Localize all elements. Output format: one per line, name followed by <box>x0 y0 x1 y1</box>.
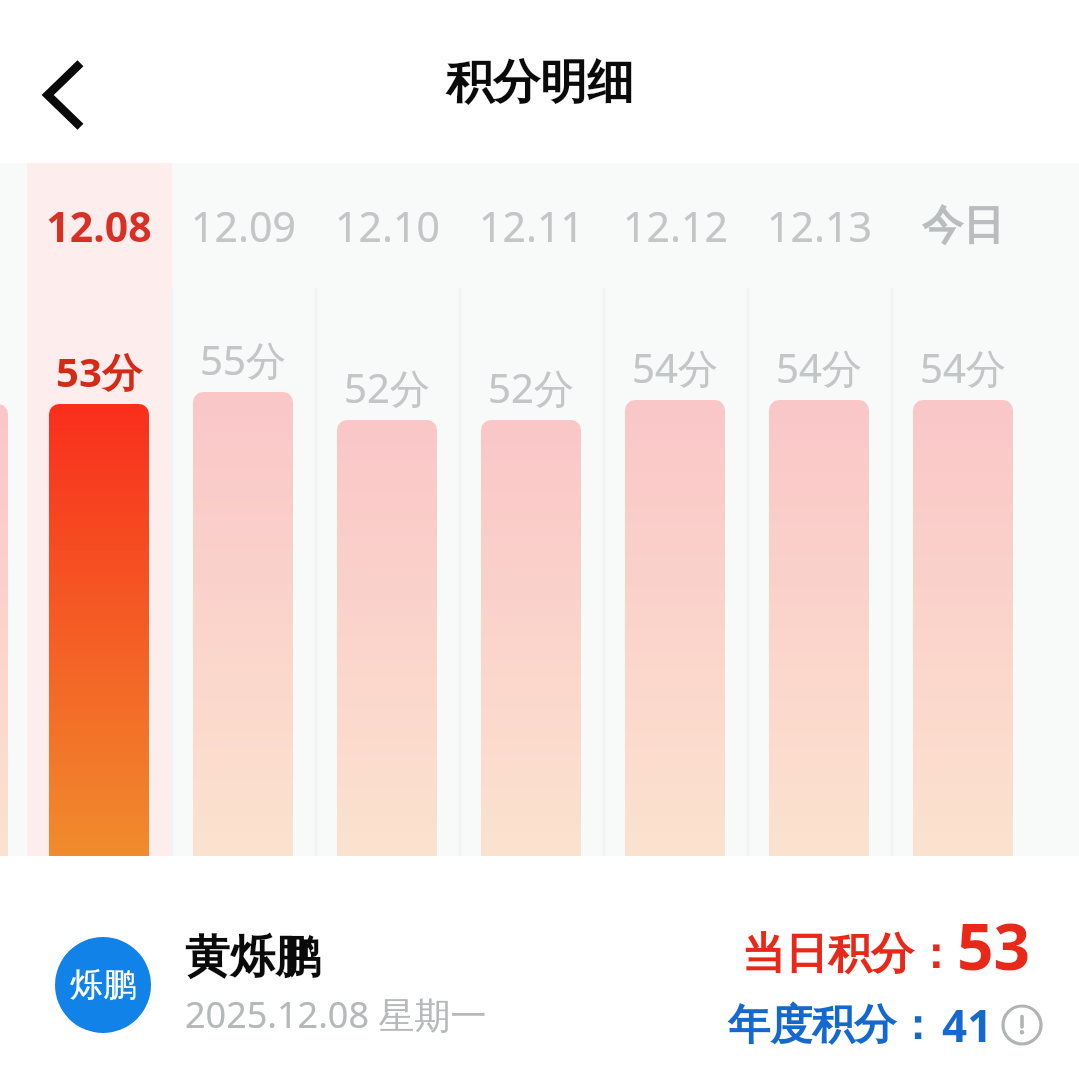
staticText: 12.08 <box>46 198 152 254</box>
staticText: 55分 <box>200 332 286 387</box>
staticText: 53分 <box>56 344 142 399</box>
staticText: 54分 <box>776 340 862 395</box>
button[interactable] <box>193 392 293 856</box>
staticText: 12.13 <box>767 198 872 254</box>
button[interactable] <box>337 420 437 856</box>
staticText: 2025.12.08 星期一 <box>185 990 487 1039</box>
staticText: 烁鹏 <box>70 964 136 1006</box>
staticText: 年度积分： <box>728 999 938 1052</box>
button[interactable] <box>27 163 172 856</box>
button[interactable] <box>769 400 869 856</box>
button[interactable] <box>913 400 1013 856</box>
staticText: 积分明细 <box>446 53 634 112</box>
staticText: 54分 <box>920 340 1006 395</box>
button[interactable]: 12.10 <box>315 196 459 256</box>
button[interactable]: Info <box>1001 1004 1043 1046</box>
staticText: 12.10 <box>335 198 440 254</box>
staticText: 41 <box>942 995 993 1055</box>
staticText: 12.12 <box>623 198 728 254</box>
staticText: 54分 <box>632 340 718 395</box>
button[interactable] <box>49 404 149 856</box>
staticText: 52分 <box>344 360 430 415</box>
staticText: 53 <box>957 902 1031 989</box>
button[interactable]: 12.12 <box>603 196 747 256</box>
button[interactable]: 12.09 <box>171 196 315 256</box>
staticText: 52分 <box>488 360 574 415</box>
button[interactable] <box>625 400 725 856</box>
staticText: 黄烁鹏 <box>185 929 320 986</box>
button[interactable]: 今日 <box>891 196 1035 256</box>
button[interactable] <box>481 420 581 856</box>
button[interactable]: 烁鹏 <box>55 932 453 1038</box>
staticText: 12.09 <box>191 198 296 254</box>
button[interactable]: 当日积分： <box>728 902 1031 1049</box>
staticText: 今日 <box>922 200 1004 252</box>
button[interactable]: 12.11 <box>459 196 603 256</box>
button[interactable]: 12.13 <box>747 196 891 256</box>
staticText: 12.11 <box>479 198 584 254</box>
staticText: 当日积分： <box>742 927 957 981</box>
button[interactable]: 12.08 <box>27 196 171 256</box>
button[interactable]: Back <box>18 50 108 140</box>
